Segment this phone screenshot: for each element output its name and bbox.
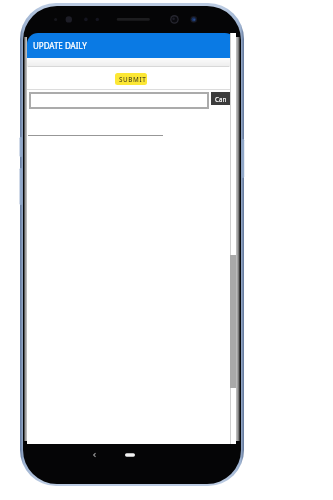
staticText: SUBMIT: [119, 75, 147, 84]
button[interactable]: UPDATE DAILY: [27, 33, 236, 58]
button[interactable]: Home: [117, 447, 143, 463]
staticText: UPDATE DAILY: [33, 40, 87, 51]
staticText: Can: [215, 95, 227, 103]
button[interactable]: SUBMIT: [115, 73, 147, 85]
button[interactable]: Can: [211, 92, 231, 105]
button[interactable]: [29, 92, 209, 109]
button[interactable]: Back: [86, 447, 102, 463]
